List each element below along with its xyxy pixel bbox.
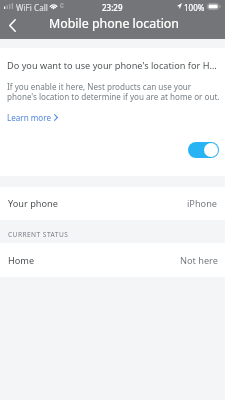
button[interactable]: Learn more [7,112,58,123]
staticText: Do you want to use your phone's location… [7,59,217,72]
staticText: WiFi Call [16,2,48,13]
staticText: CURRENT STATUS [8,230,69,239]
staticText: 23:29 [102,2,123,13]
staticText: Home [8,254,35,267]
staticText: 100% [184,2,205,13]
staticText: Learn more [7,112,52,123]
staticText: If you enable it here, Nest products can… [7,81,220,102]
staticText: Mobile phone location [49,15,180,32]
staticText: Your phone [8,197,58,210]
staticText: Not here [180,254,218,267]
staticText: iPhone [187,197,218,210]
button[interactable]: Back [0,13,25,38]
button[interactable]: Use phone location toggle [188,142,219,158]
button[interactable]: Your phone [0,187,225,220]
button[interactable]: Home [0,243,225,277]
